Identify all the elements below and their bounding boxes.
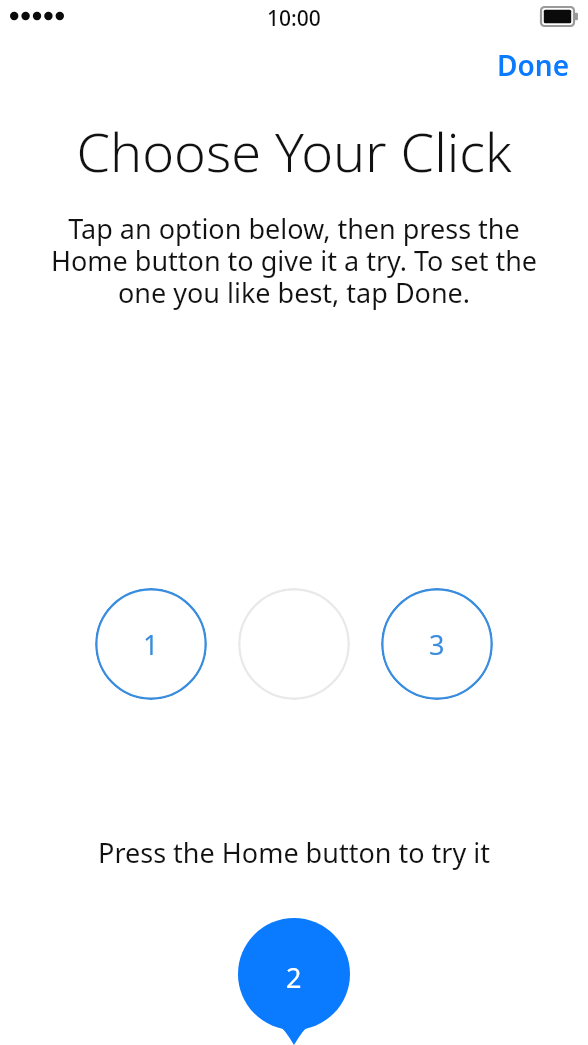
button[interactable]: Done (479, 38, 588, 92)
staticText: 10:00 (267, 4, 321, 33)
button[interactable]: Selected click option 2 (231, 918, 357, 1045)
staticText: Tap an option below, then press the Home… (20, 210, 568, 311)
staticText: 3 (429, 626, 445, 663)
staticText: 1 (143, 626, 159, 663)
staticText: Press the Home button to try it (98, 834, 490, 871)
staticText: Done (497, 46, 570, 84)
staticText: Choose Your Click (76, 114, 512, 188)
button[interactable]: 1 (95, 588, 207, 700)
staticText: 2 (286, 959, 302, 996)
button[interactable]: Click option 2 (238, 588, 350, 700)
button[interactable]: 3 (381, 588, 493, 700)
